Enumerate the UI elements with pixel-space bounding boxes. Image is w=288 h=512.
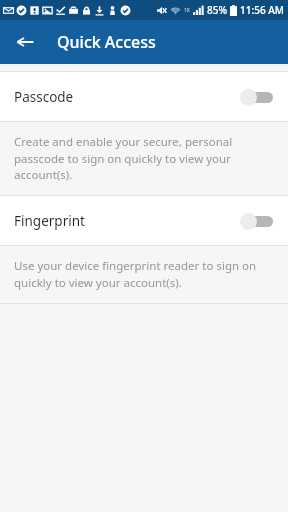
button[interactable]: Passcode: [0, 72, 288, 121]
staticText: 11:56 AM: [240, 3, 284, 17]
staticText: 85%: [207, 3, 227, 17]
staticText: Create and enable your secure, personal …: [14, 134, 270, 182]
staticText: Passcode: [14, 88, 240, 106]
staticText: Use your device fingerprint reader to si…: [14, 258, 270, 290]
staticText: Quick Access: [57, 31, 156, 53]
staticText: 1X: [184, 7, 190, 14]
button[interactable]: Back: [8, 25, 42, 59]
button[interactable]: Fingerprint: [0, 196, 288, 245]
staticText: Fingerprint: [14, 212, 240, 230]
